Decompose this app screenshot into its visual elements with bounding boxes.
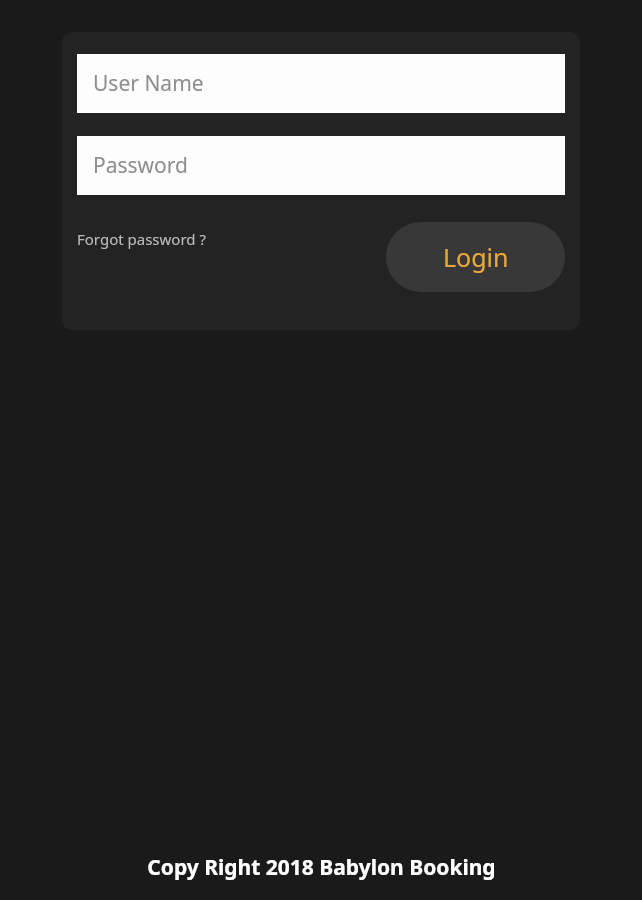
staticText: Copy Right 2018 Babylon Booking (147, 853, 496, 882)
staticText: Login (443, 240, 509, 274)
button[interactable]: Password (77, 136, 565, 195)
button[interactable]: Forgot password ? (77, 220, 206, 258)
staticText: Password (93, 151, 188, 180)
staticText: User Name (93, 69, 204, 98)
staticText: Forgot password ? (77, 229, 206, 249)
button[interactable]: User Name (77, 54, 565, 113)
button[interactable]: Login (386, 222, 565, 292)
